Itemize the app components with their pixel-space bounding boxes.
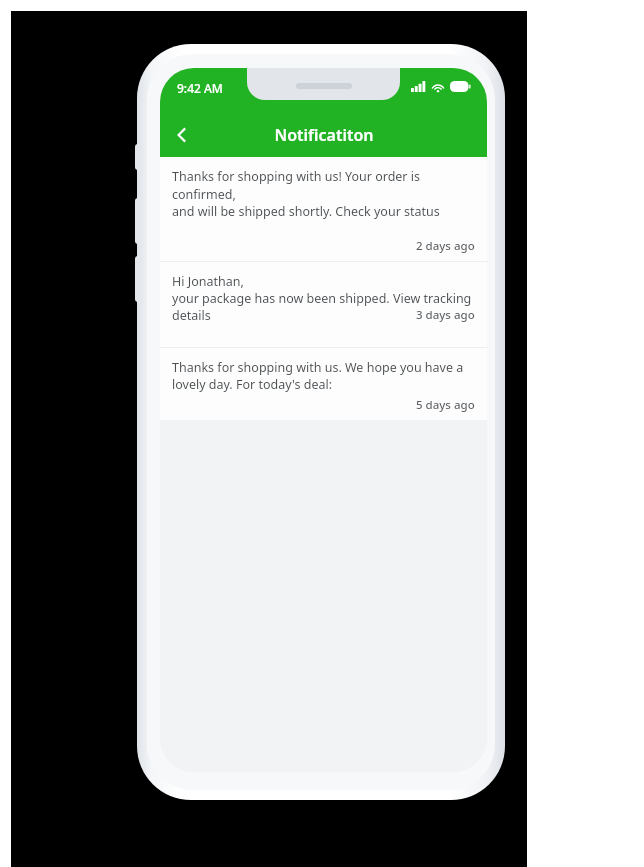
button[interactable]: Back	[160, 113, 204, 157]
staticText: Thanks for shopping with us! Your order …	[172, 168, 475, 203]
staticText: your package has now been shipped. View …	[172, 290, 472, 307]
staticText: 5 days ago	[416, 397, 475, 413]
staticText: 2 days ago	[416, 238, 475, 254]
button[interactable]: Hi Jonathan,	[160, 262, 487, 347]
staticText: Notificatiton	[274, 124, 374, 146]
staticText: Thanks for shopping with us. We hope you…	[172, 359, 464, 376]
staticText: Hi Jonathan,	[172, 273, 244, 290]
staticText: lovely day. For today's deal:	[172, 376, 333, 393]
staticText: details	[172, 307, 211, 324]
staticText: 9:42 AM	[177, 80, 223, 96]
staticText: and will be shipped shortly. Check your …	[172, 203, 440, 220]
staticText: 3 days ago	[416, 307, 475, 323]
button[interactable]: Thanks for shopping with us! Your order …	[160, 157, 487, 261]
button[interactable]: Thanks for shopping with us. We hope you…	[160, 348, 487, 420]
